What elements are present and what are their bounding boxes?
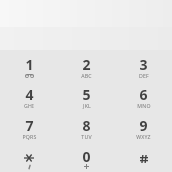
staticText: MNO xyxy=(137,102,151,109)
button[interactable]: 3 DEF xyxy=(115,50,172,80)
staticText: WXYZ xyxy=(136,133,151,140)
button[interactable]: 6 MNO xyxy=(115,80,172,110)
staticText: 9 xyxy=(139,116,148,132)
staticText: 5 xyxy=(82,85,91,101)
staticText: GHI xyxy=(24,102,34,109)
button[interactable]: 8 TUV xyxy=(58,110,115,141)
button[interactable]: Pound xyxy=(115,141,172,172)
staticText: 1 xyxy=(25,55,34,71)
staticText: PQRS xyxy=(22,133,37,140)
staticText: 3 xyxy=(139,55,148,71)
button[interactable]: 2 ABC xyxy=(58,50,115,80)
button[interactable]: 0 plus xyxy=(58,141,115,172)
staticText: TUV xyxy=(81,133,92,140)
button[interactable]: 9 WXYZ xyxy=(115,110,172,141)
button[interactable]: 5 JKL xyxy=(58,80,115,110)
staticText: JKL xyxy=(83,102,91,109)
button[interactable]: 4 GHI xyxy=(0,80,58,110)
button[interactable]: 7 PQRS xyxy=(0,110,58,141)
button[interactable]: 1 voicemail xyxy=(0,50,58,80)
staticText: DEF xyxy=(139,72,149,79)
staticText: 2 xyxy=(82,55,91,71)
staticText: 6 xyxy=(139,85,148,101)
staticText: 4 xyxy=(25,85,34,101)
button[interactable]: Star xyxy=(0,141,58,172)
staticText: 0 xyxy=(82,147,91,163)
staticText: 8 xyxy=(82,116,91,132)
staticText: ABC xyxy=(81,72,92,79)
staticText: 7 xyxy=(25,116,34,132)
